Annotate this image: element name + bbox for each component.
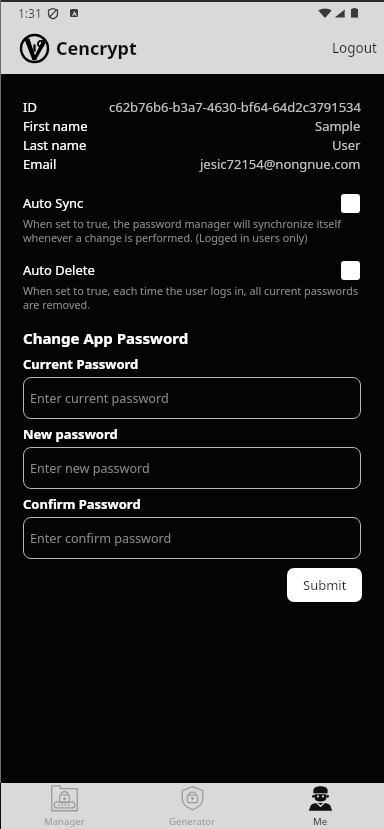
staticText: User: [332, 136, 361, 154]
staticText: Confirm Password: [23, 495, 141, 513]
button[interactable]: Submit: [287, 568, 362, 602]
button[interactable]: Me: [256, 783, 384, 829]
staticText: Email: [23, 155, 57, 173]
staticText: Change App Password: [23, 328, 189, 348]
staticText: Me: [313, 815, 328, 828]
button[interactable]: Manager: [0, 783, 128, 829]
staticText: Logout: [332, 39, 377, 57]
staticText: Enter confirm password: [30, 530, 172, 547]
staticText: Generator: [169, 815, 216, 828]
button[interactable]: Enter current password: [23, 377, 361, 419]
button[interactable]: Enter confirm password: [23, 517, 361, 559]
staticText: When set to true, the password manager w…: [23, 216, 361, 245]
staticText: Current Password: [23, 355, 139, 373]
staticText: ID: [23, 98, 37, 116]
staticText: First name: [23, 117, 88, 135]
staticText: Last name: [23, 136, 87, 154]
button[interactable]: Generator: [128, 783, 256, 829]
button[interactable]: Logout: [332, 33, 377, 63]
staticText: 1:31: [18, 5, 42, 21]
staticText: Auto Sync: [23, 194, 84, 212]
staticText: Auto Delete: [23, 261, 95, 279]
staticText: Cencrypt: [56, 36, 137, 61]
staticText: Manager: [44, 815, 85, 828]
staticText: When set to true, each time the user log…: [23, 283, 361, 312]
staticText: Enter new password: [30, 460, 150, 477]
staticText: Sample: [315, 117, 361, 135]
button[interactable]: Auto Sync: [0, 194, 384, 245]
button[interactable]: Enter new password: [23, 447, 361, 489]
staticText: jesic72154@nongnue.com: [200, 155, 361, 173]
staticText: Enter current password: [30, 390, 169, 407]
staticText: New password: [23, 425, 118, 443]
button[interactable]: Auto Delete: [0, 261, 384, 312]
staticText: Submit: [303, 576, 347, 594]
staticText: c62b76b6-b3a7-4630-bf64-64d2c3791534: [109, 98, 361, 116]
